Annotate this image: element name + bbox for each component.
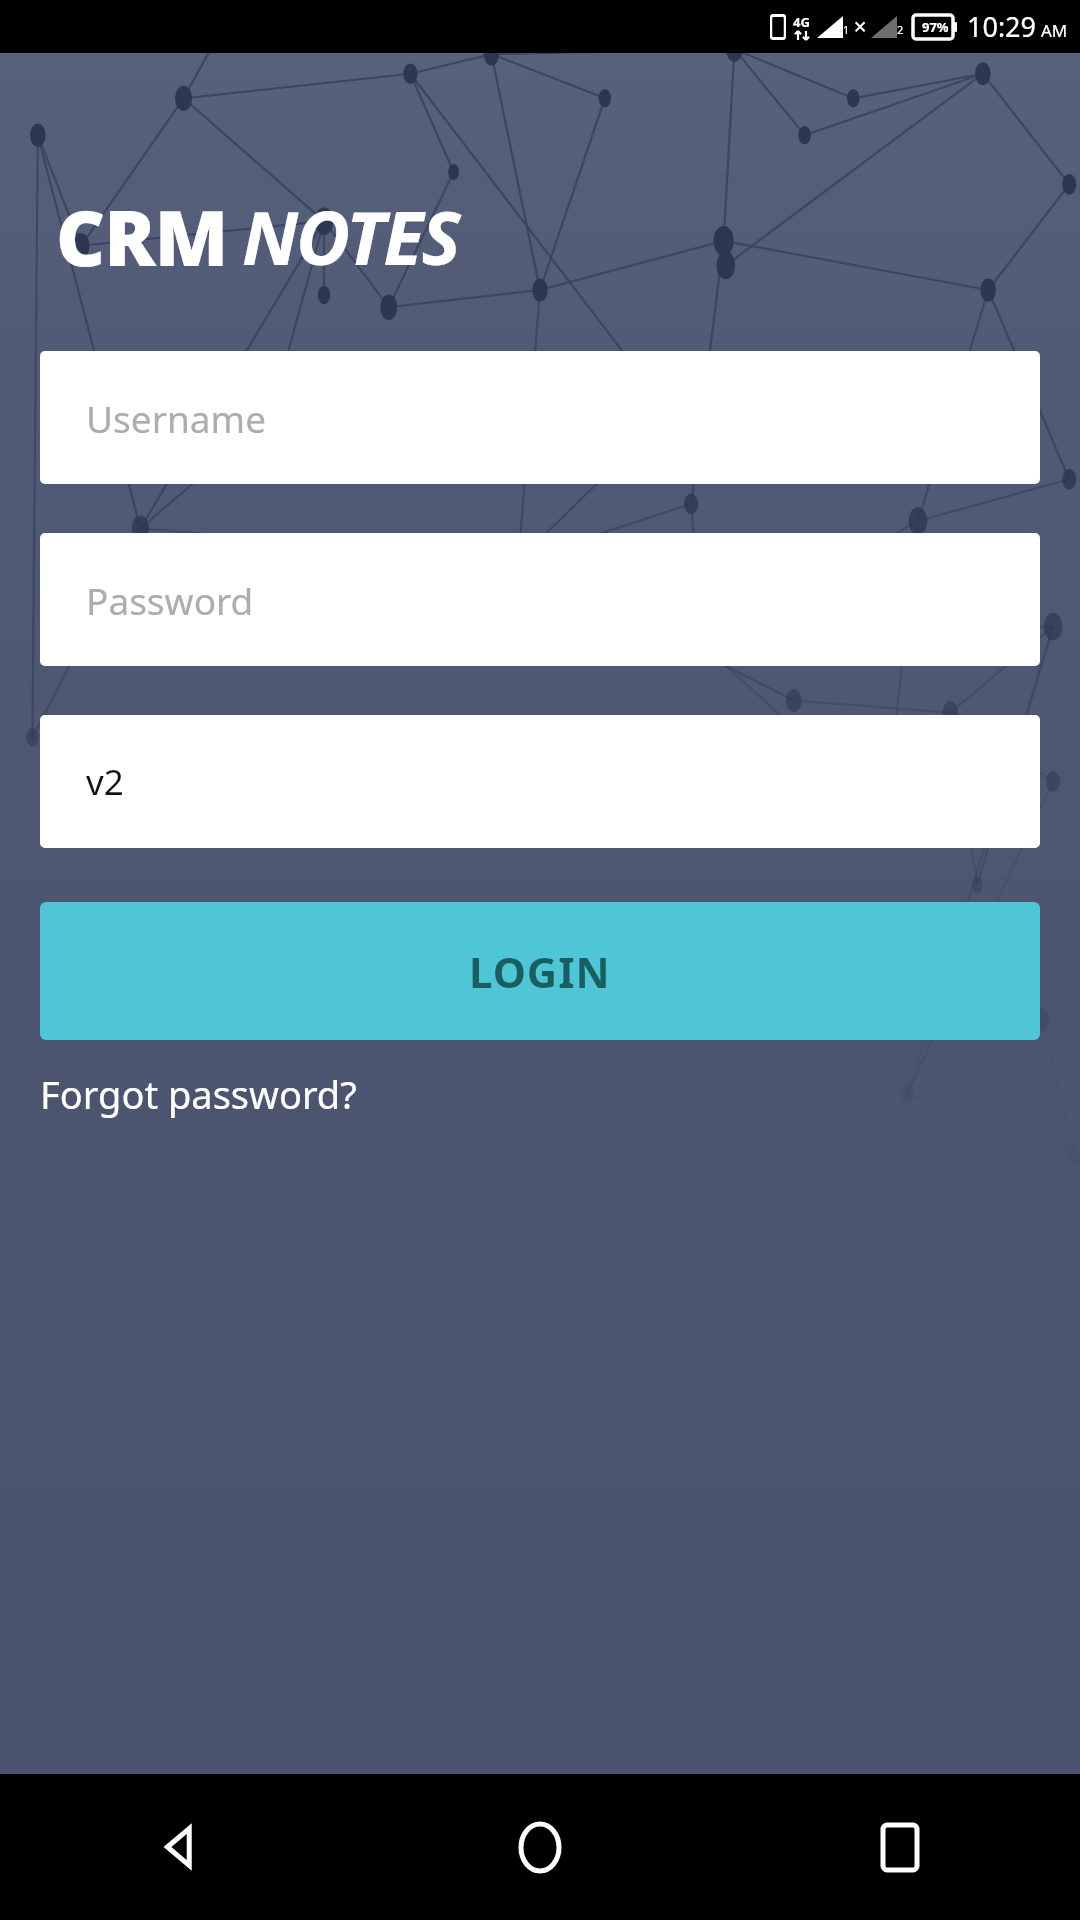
staticText: v2 [86,758,124,806]
staticText: ✕ [853,17,868,37]
button[interactable]: Forgot password? [40,1062,357,1126]
staticText: Password [86,575,254,625]
button[interactable]: Back [0,1774,360,1920]
staticText: 2 [897,22,904,37]
staticText: Username [86,393,267,443]
staticText: 1 [843,22,850,37]
button[interactable]: Recent apps [720,1774,1080,1920]
button[interactable]: Username [40,351,1040,484]
staticText: 4G [793,13,810,31]
staticText: CRM [56,185,228,289]
button[interactable]: Password [40,533,1040,666]
button[interactable]: Home [360,1774,720,1920]
staticText: 97% [922,18,949,36]
staticText: NOTES [242,186,459,287]
button[interactable]: LOGIN [40,902,1040,1040]
staticText: AM [1041,19,1068,42]
button[interactable]: v2 [40,715,1040,848]
staticText: 10:29 [967,8,1037,45]
staticText: LOGIN [469,943,611,1000]
staticText: Forgot password? [40,1068,357,1120]
